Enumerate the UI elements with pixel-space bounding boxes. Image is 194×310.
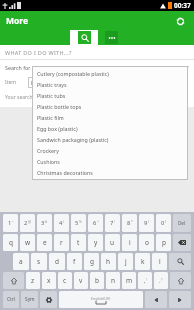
staticText: 3 [41, 219, 45, 227]
staticText: m [126, 276, 133, 285]
button[interactable]: b [90, 272, 104, 289]
staticText: v [79, 276, 83, 285]
button[interactable]: e [37, 234, 52, 251]
button[interactable]: y [88, 234, 103, 251]
button[interactable]: Left [145, 291, 167, 308]
button[interactable]: Refresh [172, 13, 188, 29]
staticText: ! [114, 219, 115, 224]
button[interactable]: 1 [3, 214, 18, 232]
button[interactable]: Del [173, 214, 191, 232]
staticText: Del [178, 220, 186, 226]
button[interactable]: Plast [28, 77, 188, 88]
staticText: * [131, 219, 133, 224]
button[interactable]: t [71, 234, 86, 251]
button[interactable]: d [49, 253, 65, 270]
button[interactable]: z [26, 272, 40, 289]
button[interactable]: r [54, 234, 69, 251]
staticText: Plastic film [37, 114, 64, 121]
button[interactable]: Plastic tubs [32, 90, 188, 101]
staticText: g [90, 257, 94, 266]
staticText: f [73, 257, 76, 266]
staticText: 5 [75, 219, 79, 227]
button[interactable]: Shift [170, 272, 191, 289]
button[interactable]: Plastic film [32, 112, 188, 123]
staticText: Plast [31, 79, 44, 86]
button[interactable]: s [31, 253, 47, 270]
button[interactable]: Sym [21, 291, 38, 308]
staticText: b [95, 276, 99, 285]
staticText: Item [5, 79, 16, 86]
button[interactable]: 4 [54, 214, 69, 232]
staticText: ^ [97, 219, 99, 224]
button[interactable]: p [156, 234, 171, 251]
button[interactable]: v [74, 272, 88, 289]
button[interactable]: Settings [40, 291, 57, 308]
button[interactable]: Egg box (plastic) [32, 123, 188, 134]
staticText: Cutlery (compostable plastic) [37, 70, 109, 77]
button[interactable]: h [101, 253, 116, 270]
button[interactable]: i [122, 234, 137, 251]
button[interactable]: , [138, 272, 152, 289]
staticText: Egg box (plastic) [37, 125, 78, 132]
button[interactable]: . [154, 272, 168, 289]
button[interactable]: Search tab [70, 30, 98, 45]
button[interactable]: Christmas decorations [32, 167, 188, 178]
staticText: p [162, 238, 166, 247]
button[interactable]: f [67, 253, 82, 270]
button[interactable]: u [105, 234, 120, 251]
staticText: i [129, 238, 131, 247]
staticText: r [60, 238, 63, 247]
button[interactable]: 0 [156, 214, 171, 232]
button[interactable]: q [3, 234, 18, 251]
staticText: Ctrl [7, 296, 15, 303]
button[interactable]: Search [169, 253, 191, 270]
button[interactable]: Cushions [32, 156, 188, 167]
button[interactable]: o [139, 234, 154, 251]
staticText: y [94, 238, 98, 247]
button[interactable]: 7 [105, 214, 120, 232]
button[interactable]: 2 [20, 214, 35, 232]
staticText: # [45, 219, 48, 224]
staticText: s [37, 257, 41, 266]
button[interactable]: Plastic bottle tops [32, 101, 188, 112]
staticText: 4 [59, 219, 63, 227]
button[interactable]: 3 [37, 214, 52, 232]
staticText: / [63, 219, 65, 224]
button[interactable]: g [84, 253, 99, 270]
staticText: Search for an item and we'll tell you ho… [5, 64, 194, 71]
staticText: 7 [110, 219, 114, 227]
button[interactable]: l [152, 253, 167, 270]
staticText: d [55, 257, 59, 266]
button[interactable]: Crockery [32, 145, 188, 156]
button[interactable]: Sandwich packaging (plastic) [32, 134, 188, 145]
button[interactable]: 8 [122, 214, 137, 232]
button[interactable]: m [122, 272, 136, 289]
button[interactable]: w [20, 234, 35, 251]
staticText: e [43, 238, 47, 247]
staticText: ? [161, 277, 163, 282]
button[interactable]: Shift [3, 272, 24, 289]
button[interactable]: More options tab [98, 30, 124, 45]
button[interactable] [173, 234, 191, 251]
staticText: c [63, 276, 67, 285]
button[interactable]: j [118, 253, 133, 270]
staticText: h [106, 257, 111, 266]
button[interactable]: a [13, 253, 29, 270]
button[interactable]: x [42, 272, 56, 289]
button[interactable]: 5 [71, 214, 86, 232]
staticText: % [79, 219, 82, 224]
staticText: 9 [144, 219, 148, 227]
button[interactable]: Right [169, 291, 191, 308]
button[interactable]: Plastic trays [32, 79, 188, 90]
staticText: Plastic tubs [37, 92, 66, 99]
button[interactable]: Cutlery (compostable plastic) [32, 68, 188, 79]
staticText: @ [28, 219, 32, 224]
button[interactable]: k [135, 253, 150, 270]
staticText: u [110, 238, 115, 247]
button[interactable]: Space [59, 291, 143, 308]
button[interactable]: c [58, 272, 72, 289]
button[interactable]: Ctrl [3, 291, 19, 308]
button[interactable]: n [106, 272, 120, 289]
button[interactable]: 9 [139, 214, 154, 232]
button[interactable]: 6 [88, 214, 103, 232]
